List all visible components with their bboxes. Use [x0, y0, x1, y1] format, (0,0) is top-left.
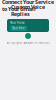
staticText: Try it free [12, 26, 25, 30]
staticText: Connect Your Service to Your Gmail [2, 0, 54, 13]
staticText: Your Voice [10, 21, 25, 24]
staticText: Custom Voice Replies [11, 3, 45, 18]
staticText: Set up your assistant in minutes [6, 41, 49, 44]
